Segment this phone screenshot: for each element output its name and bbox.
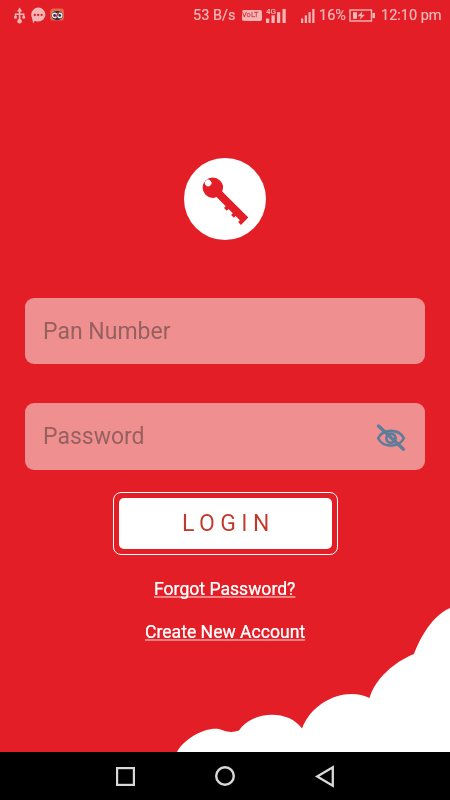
button[interactable]: Forgot Password? (154, 579, 296, 600)
staticText: VoLTE (242, 10, 262, 21)
button[interactable]: Pan Number (25, 298, 425, 364)
staticText: Password (43, 423, 145, 450)
staticText: 16% (319, 7, 346, 24)
staticText: 12:10 pm (381, 7, 442, 24)
button[interactable]: Recent apps (101, 752, 149, 800)
staticText: LOGIN (182, 510, 275, 537)
staticText: 53 B/s (193, 7, 236, 24)
button[interactable]: Back (301, 752, 349, 800)
button[interactable]: Show password (373, 419, 409, 455)
button[interactable]: Password (25, 403, 425, 470)
staticText: Pan Number (43, 318, 171, 345)
button[interactable]: Create New Account (145, 622, 306, 643)
staticText: 4G (266, 7, 276, 16)
button[interactable]: Home (201, 752, 249, 800)
button[interactable]: LOGIN (119, 498, 332, 549)
